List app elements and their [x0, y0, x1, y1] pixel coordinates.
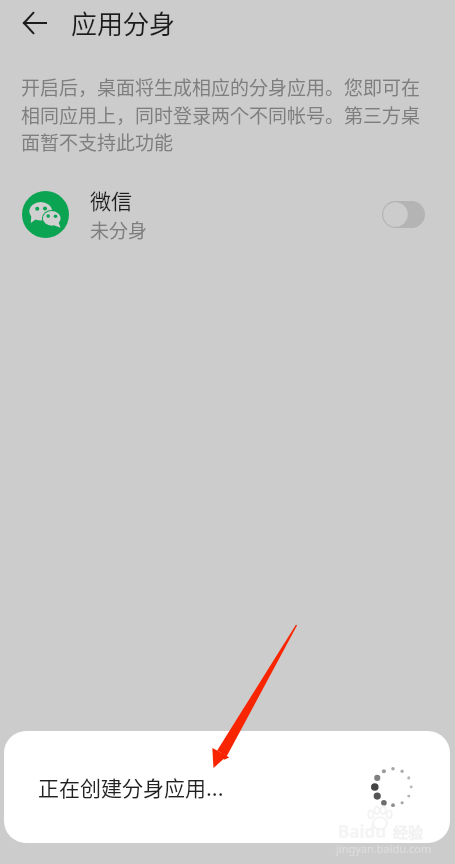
staticText: jingyan.baidu.com [336, 841, 432, 856]
staticText: Baidu [338, 820, 387, 843]
staticText: 应用分身 [71, 4, 176, 42]
button[interactable]: 微信 [0, 181, 455, 247]
staticText: 开启后，桌面将生成相应的分身应用。您即可在相同应用上，同时登录两个不同帐号。第三… [21, 73, 423, 156]
staticText: 未分身 [90, 216, 148, 244]
button[interactable]: Back [12, 0, 58, 45]
staticText: 正在创建分身应用... [38, 772, 224, 802]
staticText: 微信 [90, 185, 132, 215]
button[interactable]: Toggle app twin [382, 201, 425, 228]
staticText: 经验 [393, 821, 424, 843]
